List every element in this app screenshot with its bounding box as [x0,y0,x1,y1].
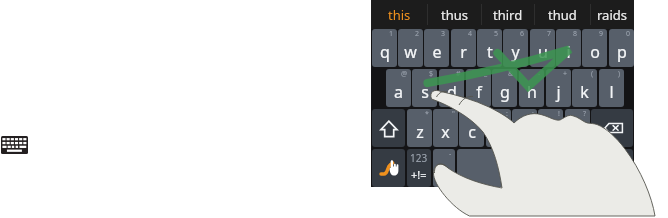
button[interactable]: 7 [530,29,555,67]
button[interactable]: Keyboard [1,136,28,154]
button[interactable]: ( [572,69,597,107]
staticText: f [476,81,482,103]
staticText: r [460,41,467,63]
button[interactable]: 9 [582,29,607,67]
button[interactable]: Shift [372,109,405,147]
button[interactable]: third [481,0,534,29]
staticText: 6 [520,29,525,39]
staticText: u [538,41,548,63]
staticText: # [456,69,461,79]
staticText: ) [618,69,621,79]
staticText: this [388,6,411,24]
button[interactable]: ) [599,69,624,107]
staticText: ; [532,109,534,119]
staticText: a [394,81,403,103]
button[interactable]: 8 [556,29,581,67]
staticText: 5 [494,29,499,39]
staticText: j [556,81,561,103]
button[interactable]: 6 [503,29,528,67]
staticText: ? [583,109,587,119]
staticText: +!= [411,167,427,182]
button[interactable]: : [486,109,511,147]
button[interactable]: @ [386,69,411,107]
button[interactable]: # [439,69,464,107]
button[interactable]: $ [412,69,437,107]
button[interactable]: ! [538,109,563,147]
button[interactable]: ; [512,109,537,147]
staticText: 7 [547,29,552,39]
staticText: z [416,121,424,143]
button[interactable]: 1 [372,29,397,67]
button[interactable]: Gesture typing [372,149,405,187]
staticText: s [421,81,429,103]
staticText: c [468,121,476,143]
button[interactable]: ' [459,109,484,147]
button[interactable]: thus [427,0,481,29]
staticText: _ [484,69,488,79]
staticText: ! [558,109,560,119]
staticText: , [442,161,447,183]
staticText: : [506,109,508,119]
button[interactable]: - [519,69,544,107]
button[interactable]: ? [565,109,590,147]
staticText: * [425,109,429,119]
button[interactable]: 5 [477,29,502,67]
staticText: k [580,81,589,103]
staticText: w [404,41,417,63]
staticText: y [511,41,520,63]
staticText: 2 [415,29,420,39]
button[interactable]: this [371,0,427,29]
staticText: e [432,41,442,63]
staticText: third [493,6,523,24]
staticText: l [609,81,614,103]
staticText: raids [597,6,627,24]
button[interactable]: thud [534,0,591,29]
staticText: thud [548,6,577,24]
button[interactable]: + [546,69,571,107]
staticText: 123 [410,151,428,165]
button[interactable]: Backspace [591,109,633,147]
button[interactable]: _ [466,69,491,107]
staticText: g [500,81,510,103]
staticText: 9 [599,29,604,39]
button[interactable]: - [433,149,455,187]
button[interactable]: & [492,69,517,107]
button[interactable]: raids [590,0,634,29]
staticText: & [508,69,514,79]
staticText: 4 [468,29,473,39]
button[interactable]: 2 [398,29,423,67]
button[interactable]: * [407,109,432,147]
staticText: i [566,41,571,63]
staticText: ( [591,69,594,79]
staticText: m [570,121,585,143]
button[interactable]: Enter [601,149,633,187]
staticText: 1 [389,29,394,39]
staticText: 8 [573,29,578,39]
staticText: 0 [626,29,631,39]
staticText: h [527,81,537,103]
staticText: $ [429,69,434,79]
staticText: d [447,81,457,103]
staticText: thus [441,6,468,24]
staticText: 3 [441,29,446,39]
staticText: q [380,41,390,63]
button[interactable] [457,149,575,187]
staticText: x [441,121,450,143]
staticText: - [449,149,452,159]
staticText: p [617,41,627,63]
staticText: - [538,69,541,79]
button[interactable]: 123 [407,149,431,187]
staticText: o [590,41,600,63]
button[interactable]: 0 [609,29,634,67]
staticText: + [563,69,568,79]
staticText: t [487,41,493,63]
button[interactable]: " [433,109,458,147]
button[interactable]: 4 [451,29,476,67]
button[interactable]: 3 [424,29,449,67]
